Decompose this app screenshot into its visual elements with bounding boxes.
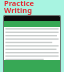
staticText: Writing bbox=[4, 5, 32, 15]
button[interactable] bbox=[4, 16, 60, 72]
staticText: Practice bbox=[4, 0, 35, 8]
